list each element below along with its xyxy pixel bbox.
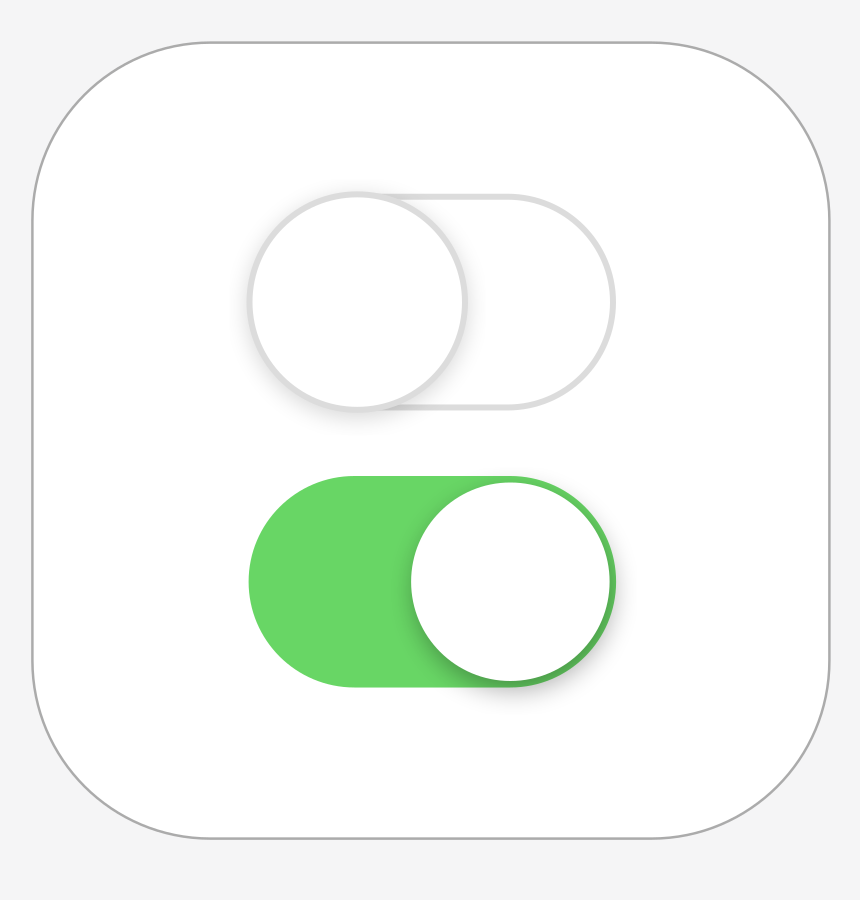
button[interactable]: Switch on (0, 0, 860, 900)
button[interactable]: Switch off (0, 0, 860, 900)
